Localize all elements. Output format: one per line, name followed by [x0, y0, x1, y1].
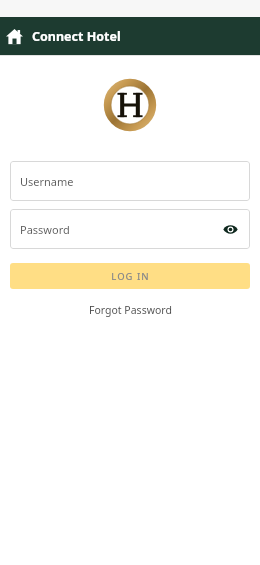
staticText: LOG IN [111, 270, 150, 283]
staticText: Password [20, 222, 70, 237]
staticText: Username [20, 174, 74, 189]
staticText: Connect Hotel [32, 28, 121, 45]
button[interactable]: Password [10, 209, 250, 249]
button[interactable]: Username [10, 161, 250, 201]
staticText: Forgot Password [89, 303, 172, 317]
button[interactable]: LOG IN [10, 263, 250, 289]
button[interactable]: Home [0, 17, 29, 55]
button[interactable]: Show password [220, 219, 240, 239]
button[interactable]: Forgot Password [83, 301, 178, 319]
